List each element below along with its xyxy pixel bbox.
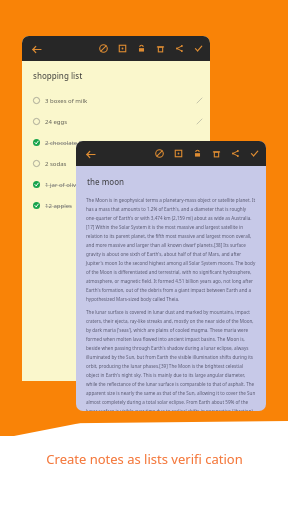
staticText: shopping list bbox=[33, 70, 83, 81]
button[interactable]: 2 chocolate bars bbox=[22, 132, 210, 153]
button[interactable]: 24 eggs bbox=[22, 111, 210, 132]
staticText: 2 chocolate bars bbox=[45, 139, 92, 147]
button[interactable]: Back bbox=[29, 42, 43, 56]
button[interactable]: Done bbox=[192, 42, 205, 55]
button[interactable]: Archive bbox=[116, 42, 129, 55]
button[interactable]: 3 boxes of milk bbox=[22, 90, 210, 111]
staticText: The lunar surface is covered in lunar du… bbox=[86, 309, 256, 411]
button[interactable]: Lock bbox=[191, 147, 204, 160]
button[interactable]: Archive bbox=[172, 147, 185, 160]
button[interactable]: 2 sodas bbox=[22, 153, 210, 174]
button[interactable]: Delete bbox=[210, 147, 223, 160]
staticText: 2 sodas bbox=[45, 160, 67, 168]
button[interactable]: Delete bbox=[154, 42, 167, 55]
button[interactable]: 1 jar of olives bbox=[22, 174, 210, 195]
staticText: Create notes as lists verifi cation bbox=[46, 450, 243, 468]
button[interactable]: Done bbox=[248, 147, 261, 160]
staticText: The Moon is in geophysical terms a plane… bbox=[86, 197, 256, 302]
staticText: the moon bbox=[87, 176, 125, 187]
button[interactable]: Share bbox=[173, 42, 186, 55]
staticText: 12 apples bbox=[45, 202, 72, 210]
button[interactable]: 12 apples bbox=[22, 195, 210, 216]
button[interactable]: Lock bbox=[135, 42, 148, 55]
button[interactable]: Color bbox=[153, 147, 166, 160]
staticText: 24 eggs bbox=[45, 118, 68, 126]
button[interactable]: Color bbox=[97, 42, 110, 55]
staticText: 1 jar of olives bbox=[45, 181, 83, 189]
staticText: 3 boxes of milk bbox=[45, 97, 88, 105]
button[interactable]: Back bbox=[83, 147, 97, 161]
button[interactable]: Share bbox=[229, 147, 242, 160]
